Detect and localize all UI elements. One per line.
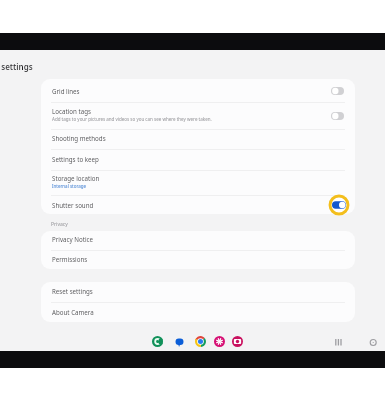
button[interactable]: Privacy Notice	[41, 231, 355, 250]
staticText: About Camera	[52, 308, 94, 316]
button[interactable]: Recents	[334, 336, 345, 347]
button[interactable]: Toggle	[331, 112, 344, 120]
button[interactable]: Storage location	[41, 171, 355, 195]
button[interactable]: Grid lines	[41, 79, 355, 102]
button[interactable]: Permissions	[41, 251, 355, 269]
button[interactable]: Gallery	[214, 336, 225, 347]
staticText: Location tags	[52, 107, 91, 115]
button[interactable]: Home	[368, 336, 379, 347]
staticText: Grid lines	[52, 87, 80, 95]
staticText: Settings to keep	[52, 155, 99, 163]
staticText: Shooting methods	[52, 134, 106, 142]
button[interactable]: Location tags	[41, 103, 355, 129]
button[interactable]: Settings to keep	[41, 150, 355, 170]
staticText: Storage location	[52, 174, 100, 182]
staticText: Permissions	[52, 255, 88, 263]
button[interactable]: Chrome	[195, 336, 206, 347]
button[interactable]: About Camera	[41, 303, 355, 322]
button[interactable]: Phone	[152, 336, 163, 347]
button[interactable]: Camera	[232, 336, 243, 347]
button[interactable]: Shutter sound	[41, 196, 355, 214]
button[interactable]: Reset settings	[41, 282, 355, 302]
staticText: Shutter sound	[52, 201, 94, 209]
staticText: Camera settings	[0, 61, 33, 72]
button[interactable]: Shutter sound toggle	[331, 201, 344, 209]
staticText: Reset settings	[52, 287, 93, 295]
staticText: Add tags to your pictures and videos so …	[52, 116, 212, 122]
staticText: Privacy Notice	[52, 235, 93, 243]
button[interactable]: Messages	[174, 336, 185, 347]
button[interactable]: Shooting methods	[41, 130, 355, 149]
button[interactable]: Toggle	[331, 87, 344, 95]
staticText: Internal storage	[52, 183, 87, 189]
staticText: Privacy	[51, 221, 68, 228]
